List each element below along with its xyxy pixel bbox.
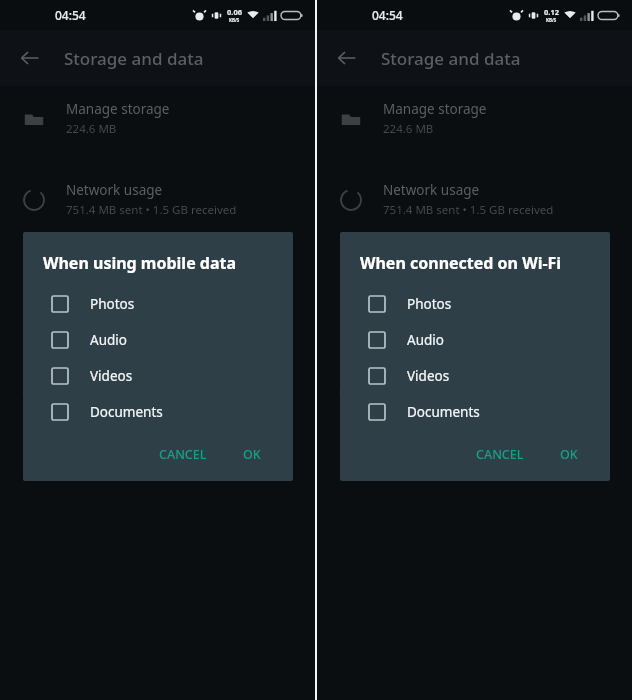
staticText: Media upload quality: [22, 361, 136, 377]
staticText: Auto (recommended): [66, 451, 181, 467]
staticText: Choose the quality of media files to be …: [339, 384, 572, 400]
button[interactable]: Videos: [43, 358, 279, 394]
staticText: 751.4 MB sent • 1.5 GB received: [66, 202, 237, 218]
staticText: KB/S: [229, 17, 240, 23]
button[interactable]: Documents: [360, 394, 596, 430]
button[interactable]: Manage storage: [0, 96, 315, 141]
staticText: Manage storage: [66, 100, 170, 118]
staticText: OK: [243, 446, 261, 463]
staticText: No media: [66, 307, 119, 323]
staticText: Choose the quality of media files to be …: [22, 384, 255, 400]
staticText: No media: [383, 307, 436, 323]
staticText: When connected on Wi-Fi: [360, 252, 562, 274]
button[interactable]: Audio: [360, 322, 596, 358]
staticText: 751.4 MB sent • 1.5 GB received: [383, 202, 554, 218]
staticText: Audio: [407, 331, 444, 349]
staticText: CANCEL: [476, 446, 524, 463]
button[interactable]: CANCEL: [151, 438, 215, 471]
staticText: 04:54: [55, 7, 86, 23]
staticText: Network usage: [66, 181, 163, 199]
staticText: When roaming: [383, 286, 478, 304]
button[interactable]: OK: [552, 438, 586, 471]
staticText: Storage and data: [64, 47, 204, 70]
staticText: CANCEL: [159, 446, 207, 463]
button[interactable]: Documents: [43, 394, 279, 430]
staticText: When roaming: [66, 286, 161, 304]
button[interactable]: Manage storage: [317, 96, 632, 141]
staticText: Network usage: [383, 181, 480, 199]
button[interactable]: When roaming: [317, 282, 632, 327]
button[interactable]: Audio: [43, 322, 279, 358]
button[interactable]: Videos: [360, 358, 596, 394]
staticText: 0.12: [544, 7, 559, 17]
button[interactable]: Network usage: [0, 177, 315, 222]
staticText: Videos: [90, 367, 133, 385]
button[interactable]: Photo upload quality: [0, 426, 315, 471]
button[interactable]: Back: [327, 38, 367, 78]
staticText: Photos: [407, 295, 452, 313]
button[interactable]: OK: [235, 438, 269, 471]
staticText: Auto (recommended): [383, 451, 498, 467]
staticText: Videos: [407, 367, 450, 385]
staticText: OK: [560, 446, 578, 463]
staticText: Documents: [407, 403, 480, 421]
button[interactable]: When roaming: [0, 282, 315, 327]
button[interactable]: Photos: [43, 286, 279, 322]
button[interactable]: Photo upload quality: [317, 426, 632, 471]
staticText: 0.06: [227, 7, 242, 17]
staticText: KB/S: [546, 17, 557, 23]
staticText: Media upload quality: [339, 361, 453, 377]
staticText: Manage storage: [383, 100, 487, 118]
staticText: Documents: [90, 403, 163, 421]
button[interactable]: CANCEL: [468, 438, 532, 471]
staticText: Photos: [90, 295, 135, 313]
button[interactable]: Back: [10, 38, 50, 78]
staticText: 224.6 MB: [66, 121, 117, 137]
staticText: Audio: [90, 331, 127, 349]
button[interactable]: Photos: [360, 286, 596, 322]
staticText: 04:54: [372, 7, 403, 23]
button[interactable]: Network usage: [317, 177, 632, 222]
staticText: Storage and data: [381, 47, 521, 70]
staticText: 224.6 MB: [383, 121, 434, 137]
staticText: When using mobile data: [43, 252, 237, 274]
